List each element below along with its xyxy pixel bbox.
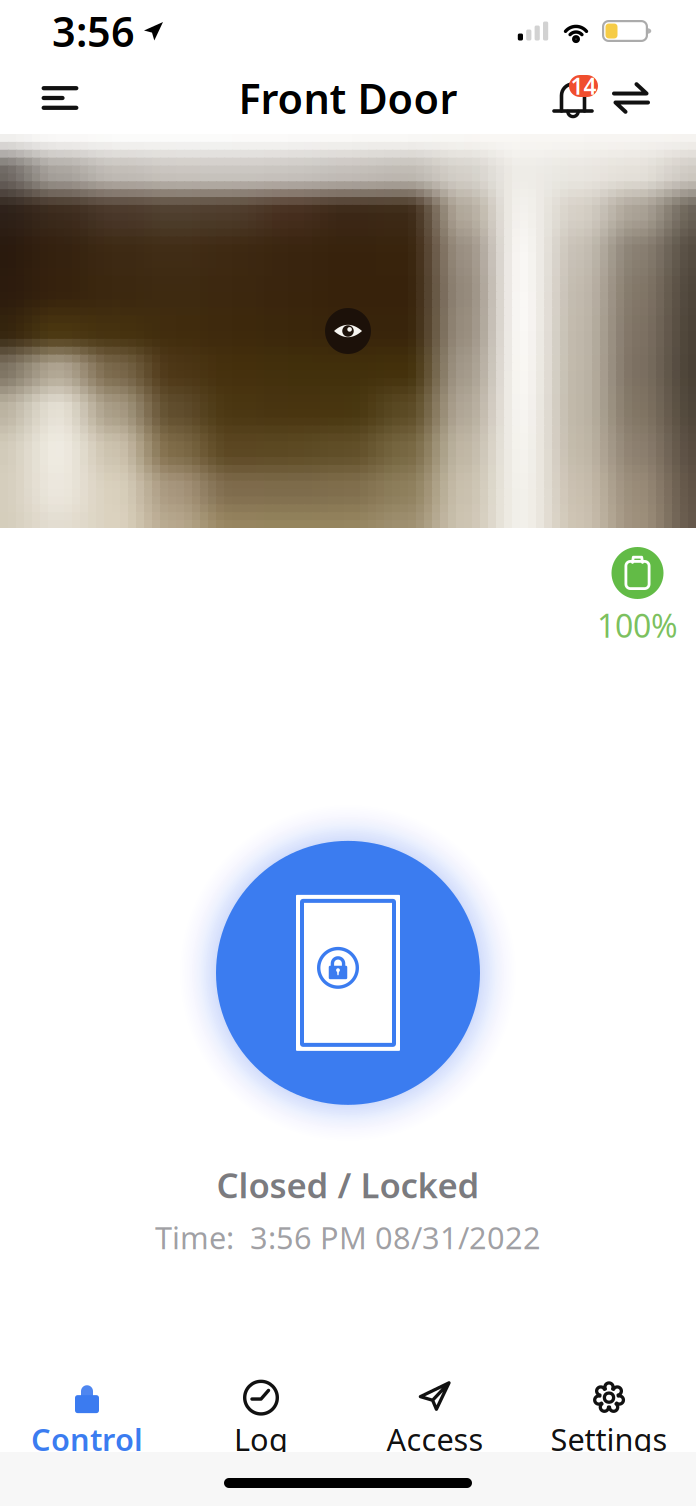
- button[interactable]: Switch device: [602, 67, 660, 129]
- button[interactable]: Settings: [522, 1364, 696, 1452]
- staticText: Settings: [550, 1419, 667, 1459]
- staticText: 3:56: [52, 4, 135, 58]
- button[interactable]: Access: [348, 1364, 522, 1452]
- staticText: 100%: [597, 604, 678, 646]
- button[interactable]: Menu: [29, 67, 91, 129]
- button[interactable]: Control: [0, 1364, 174, 1452]
- staticText: Closed / Locked: [216, 1162, 479, 1208]
- button[interactable]: Log: [174, 1364, 348, 1452]
- button[interactable]: Toggle lock: [188, 813, 508, 1133]
- staticText: Access: [386, 1419, 483, 1459]
- staticText: Control: [31, 1419, 143, 1459]
- staticText: Time: 3:56 PM 08/31/2022: [155, 1217, 541, 1258]
- staticText: Log: [234, 1419, 288, 1459]
- button[interactable]: Notifications: [546, 67, 602, 129]
- staticText: Front Door: [238, 71, 457, 125]
- staticText: 14: [570, 71, 596, 101]
